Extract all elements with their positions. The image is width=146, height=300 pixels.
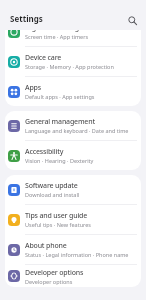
staticText: Download and install	[25, 191, 80, 198]
staticText: Language and keyboard · Date and time	[25, 127, 129, 134]
staticText: About phone	[25, 241, 67, 251]
staticText: General management	[25, 117, 95, 127]
staticText: Digital Wellbeing	[25, 30, 79, 33]
button[interactable]: Developer options	[5, 265, 141, 287]
button[interactable]: General management	[5, 111, 141, 140]
staticText: Software update	[25, 181, 78, 191]
button[interactable]: Software update	[5, 175, 141, 204]
staticText: Settings	[10, 13, 43, 24]
button[interactable]: Accessibility	[5, 141, 141, 170]
button[interactable]: Tips and user guide	[5, 205, 141, 234]
staticText: Status · Legal information · Phone name	[25, 251, 129, 258]
staticText: Screen time · App timers	[25, 33, 89, 40]
button[interactable]: Apps	[5, 77, 141, 106]
staticText: Developer options	[25, 278, 73, 285]
button[interactable]: Device care	[5, 47, 141, 76]
staticText: Apps	[25, 83, 41, 93]
staticText: Device care	[25, 53, 62, 63]
button[interactable]: Search	[124, 12, 140, 28]
staticText: Accessibility	[25, 147, 64, 157]
staticText: Tips and user guide	[25, 211, 88, 221]
button[interactable]: Digital Wellbeing	[5, 30, 141, 46]
staticText: Default apps · App settings	[25, 93, 95, 100]
staticText: Useful tips · New features	[25, 221, 91, 228]
staticText: Storage · Memory · App protection	[25, 63, 114, 70]
button[interactable]: About phone	[5, 235, 141, 264]
staticText: Developer options	[25, 268, 84, 278]
staticText: Vision · Hearing · Dexterity	[25, 157, 94, 164]
